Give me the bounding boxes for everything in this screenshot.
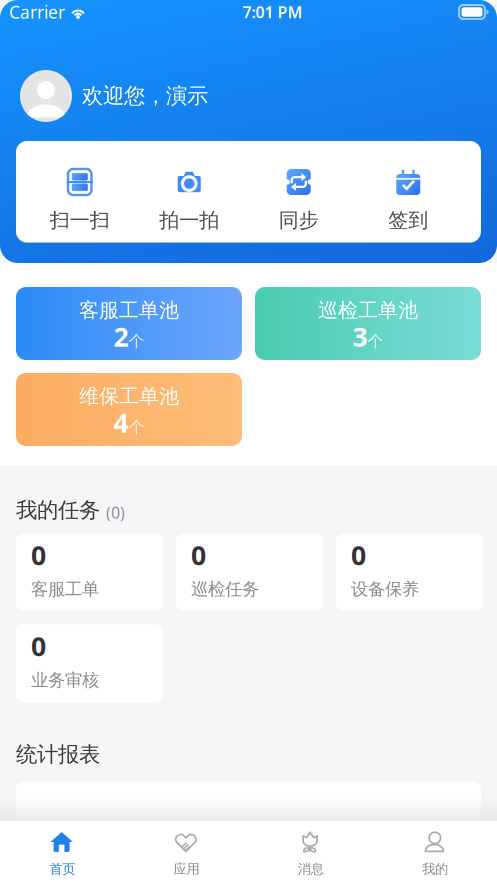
staticText: 巡检任务 <box>191 579 259 600</box>
staticText: 消息 <box>298 861 324 877</box>
staticText: 设备保养 <box>351 579 419 600</box>
staticText: 应用 <box>173 861 199 877</box>
staticText: 签到 <box>388 208 428 233</box>
button[interactable]: 0 <box>16 624 163 702</box>
staticText: 我的任务 <box>16 497 100 523</box>
button[interactable]: 首页 <box>0 818 124 883</box>
staticText: 客服工单 <box>31 579 99 600</box>
staticText: 欢迎您，演示 <box>82 83 208 109</box>
staticText: 扫一扫 <box>50 208 110 233</box>
staticText: 同步 <box>279 208 319 233</box>
staticText: Carrier <box>9 0 65 23</box>
button[interactable]: 我的 <box>373 818 497 883</box>
staticText: 0 <box>31 537 46 573</box>
button[interactable]: 同步 <box>244 169 353 233</box>
button[interactable]: 客服工单池 <box>16 287 242 360</box>
staticText: 拍一拍 <box>159 208 219 233</box>
staticText: 0 <box>191 537 206 573</box>
staticText: 维保工单池 <box>79 384 179 409</box>
button[interactable]: 0 <box>336 533 483 611</box>
button[interactable]: 拍一拍 <box>134 169 244 233</box>
staticText: 0 <box>351 537 366 573</box>
staticText: 0 <box>31 628 46 664</box>
staticText: 7:01 PM <box>242 1 302 23</box>
button[interactable]: 签到 <box>353 169 463 233</box>
staticText: 首页 <box>49 861 75 877</box>
button[interactable]: 巡检工单池 <box>255 287 481 360</box>
button[interactable]: 维保工单池 <box>16 373 242 446</box>
staticText: 统计报表 <box>16 741 100 767</box>
staticText: 业务审核 <box>31 670 99 691</box>
button[interactable]: 应用 <box>124 818 248 883</box>
staticText: 4 <box>113 405 128 440</box>
button[interactable]: 扫一扫 <box>25 169 134 233</box>
button[interactable]: 0 <box>16 533 163 611</box>
staticText: 我的 <box>422 861 448 877</box>
staticText: 3 <box>352 319 367 354</box>
staticText: 个 <box>128 331 144 351</box>
staticText: 客服工单池 <box>79 298 179 323</box>
staticText: 个 <box>367 331 383 351</box>
staticText: 个 <box>128 417 144 437</box>
button[interactable]: 0 <box>176 533 323 611</box>
staticText: 2 <box>113 319 128 354</box>
staticText: 巡检工单池 <box>318 298 418 323</box>
staticText: (0) <box>106 502 125 523</box>
button[interactable]: 消息 <box>248 818 373 883</box>
